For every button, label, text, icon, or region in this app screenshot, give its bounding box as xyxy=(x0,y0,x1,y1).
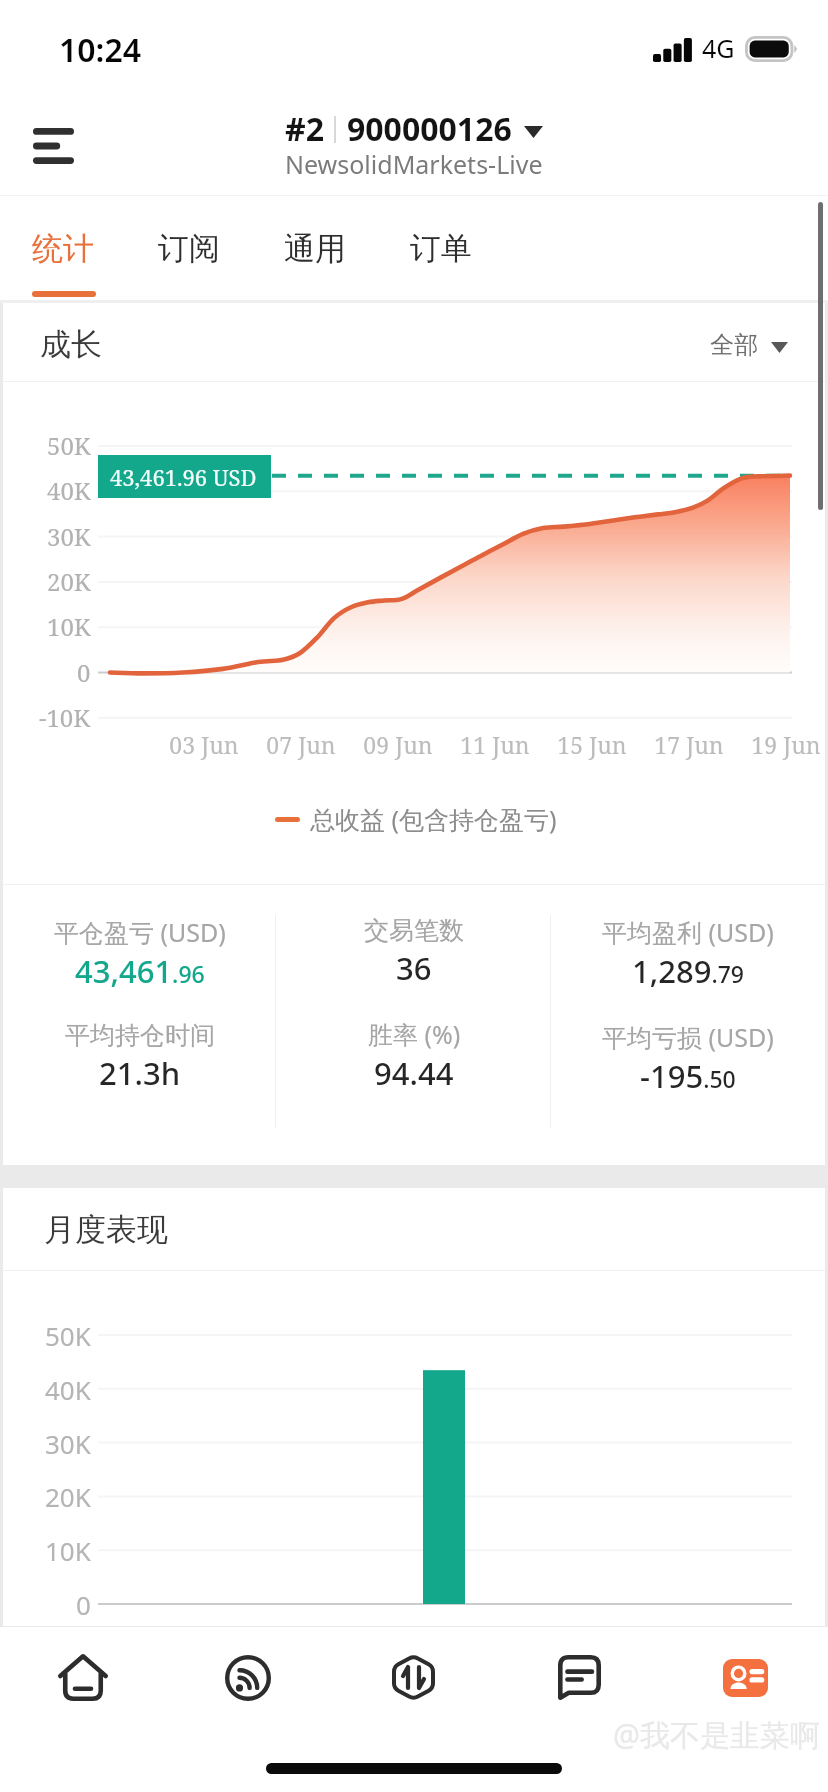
button[interactable]: 订单 xyxy=(378,196,504,300)
staticText: 平仓盈亏 (USD) xyxy=(54,915,226,949)
button[interactable]: Signals xyxy=(165,1627,330,1728)
staticText: 4G xyxy=(702,31,735,65)
staticText: 40K xyxy=(45,1372,91,1407)
staticText: 胜率 (%) xyxy=(368,1017,461,1051)
button[interactable]: Chat xyxy=(496,1627,662,1728)
button[interactable]: Profile xyxy=(662,1627,828,1728)
button[interactable]: 统计 xyxy=(0,196,126,300)
staticText: 成长 xyxy=(40,325,102,364)
button[interactable]: 通用 xyxy=(252,196,378,300)
staticText: 15 Jun xyxy=(557,729,627,760)
staticText: 平均盈利 (USD) xyxy=(602,915,774,949)
staticText: 20K xyxy=(47,565,91,598)
staticText: 50K xyxy=(45,1318,91,1353)
staticText: NewsolidMarkets-Live xyxy=(285,147,543,181)
staticText: 30K xyxy=(47,520,91,553)
staticText: 0 xyxy=(76,1587,91,1622)
button[interactable]: Menu xyxy=(13,106,93,186)
staticText: 900000126 xyxy=(347,107,512,151)
staticText: 总收益 (包含持仓盈亏) xyxy=(310,802,557,836)
staticText: 订阅 xyxy=(158,229,220,268)
staticText: 09 Jun xyxy=(363,729,433,760)
staticText: #2 xyxy=(285,107,324,151)
staticText: 43,461.96 USD xyxy=(110,462,257,492)
staticText: 平均亏损 (USD) xyxy=(602,1020,774,1054)
button[interactable]: Home xyxy=(0,1627,165,1728)
staticText: 月度表现 xyxy=(44,1210,168,1249)
staticText: 统计 xyxy=(32,229,94,268)
staticText: 10K xyxy=(47,610,91,643)
button[interactable]: 全部 xyxy=(710,330,788,360)
staticText: 10:24 xyxy=(59,28,142,72)
button[interactable]: 订阅 xyxy=(126,196,252,300)
staticText: 订单 xyxy=(410,229,472,268)
button[interactable]: Trade xyxy=(330,1627,496,1728)
staticText: 43,461.96 xyxy=(75,950,205,992)
staticText: 03 Jun xyxy=(169,729,239,760)
staticText: 20K xyxy=(45,1479,91,1514)
staticText: 通用 xyxy=(284,229,346,268)
staticText: 36 xyxy=(396,947,432,989)
staticText: 平均持仓时间 xyxy=(65,1020,215,1051)
staticText: 94.44 xyxy=(374,1052,454,1094)
staticText: 1,289.79 xyxy=(632,950,744,992)
staticText: 0 xyxy=(77,656,91,689)
staticText: 07 Jun xyxy=(266,729,336,760)
staticText: -195.50 xyxy=(640,1055,736,1097)
button[interactable]: #2 xyxy=(285,107,543,185)
staticText: 50K xyxy=(47,429,91,462)
staticText: 21.3h xyxy=(99,1052,181,1094)
staticText: 17 Jun xyxy=(654,729,724,760)
staticText: 40K xyxy=(47,474,91,507)
staticText: 10K xyxy=(45,1533,91,1568)
staticText: 交易笔数 xyxy=(364,915,464,946)
staticText: 19 Jun xyxy=(751,729,821,760)
staticText: 30K xyxy=(45,1426,91,1461)
staticText: 11 Jun xyxy=(460,729,530,760)
staticText: @我不是韭菜啊 xyxy=(613,1714,820,1755)
staticText: 全部 xyxy=(710,330,758,360)
staticText: -10K xyxy=(39,701,91,734)
